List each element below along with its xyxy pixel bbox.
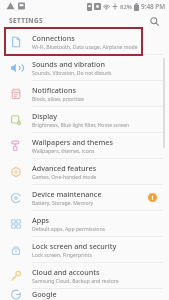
staticText: Games, One-handed mode: [32, 174, 97, 181]
staticText: 82%: [120, 3, 132, 11]
staticText: Block, allow, prioritize: [32, 96, 84, 103]
staticText: Connections: [32, 33, 75, 43]
staticText: 9:48 PM: [141, 2, 166, 11]
staticText: Sounds and vibration: [32, 59, 105, 69]
staticText: Samsung Cloud, Backup and restore: [32, 278, 119, 285]
staticText: Google: [32, 289, 57, 299]
staticText: Apps: [32, 215, 50, 225]
staticText: Advanced features: [32, 163, 97, 173]
staticText: Battery, Storage, Memory: [32, 200, 94, 207]
staticText: Device maintenance: [32, 189, 102, 199]
button[interactable]: Lock screen and security: [0, 237, 169, 263]
button[interactable]: Wallpapers and themes: [0, 133, 169, 159]
staticText: Brightness, Blue light filter, Home scre…: [32, 122, 130, 129]
staticText: Default apps, App permissions: [32, 226, 105, 233]
button[interactable]: Device maintenance: [0, 185, 169, 211]
staticText: Sounds, Vibration, Do not disturb: [32, 70, 112, 77]
button[interactable]: Google: [0, 289, 169, 300]
staticText: Cloud and accounts: [32, 267, 100, 277]
staticText: SETTINGS: [9, 16, 44, 25]
staticText: Lock screen and security: [32, 241, 117, 251]
button[interactable]: Cloud and accounts: [0, 263, 169, 289]
button[interactable]: Search: [146, 13, 162, 29]
button[interactable]: Advanced features: [0, 159, 169, 185]
staticText: Wi-Fi, Bluetooth, Data usage, Airplane m…: [32, 44, 138, 51]
button[interactable]: Sounds and vibration: [0, 55, 169, 81]
staticText: Lock screen, Fingerprints: [32, 252, 92, 259]
button[interactable]: Display: [0, 107, 169, 133]
button[interactable]: Notifications: [0, 81, 169, 107]
staticText: Display: [32, 111, 57, 121]
staticText: Wallpapers, themes, icons: [32, 148, 95, 155]
button[interactable]: Connections: [0, 29, 169, 55]
button[interactable]: Apps: [0, 211, 169, 237]
staticText: Notifications: [32, 85, 76, 95]
staticText: Wallpapers and themes: [32, 137, 113, 147]
